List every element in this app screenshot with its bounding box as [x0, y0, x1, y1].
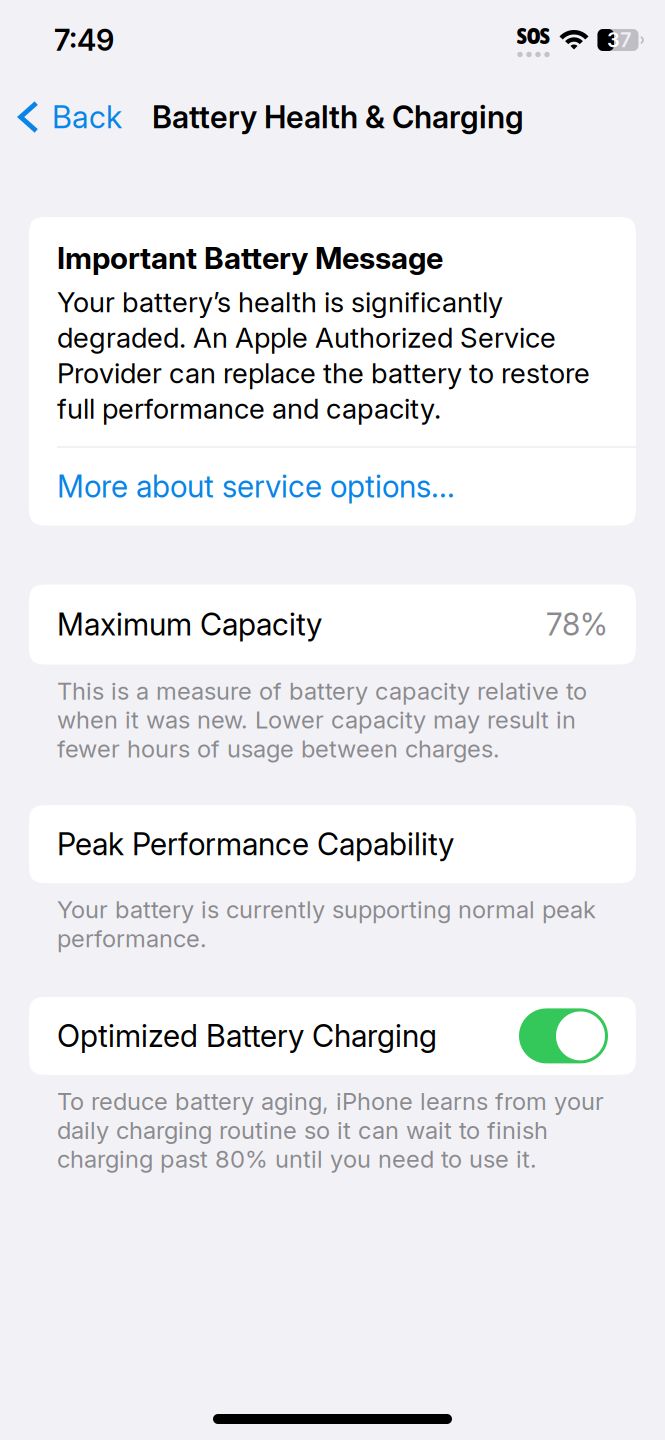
staticText: More about service options... [57, 468, 455, 505]
staticText: Maximum Capacity [57, 606, 322, 643]
staticText: This is a measure of battery capacity re… [57, 676, 587, 763]
button[interactable]: Back [12, 89, 132, 145]
staticText: 3 [607, 28, 620, 52]
staticText: Optimized Battery Charging [57, 1017, 437, 1054]
staticText: To reduce battery aging, iPhone learns f… [57, 1087, 604, 1173]
staticText: Your battery’s health is significantly d… [57, 285, 590, 425]
button[interactable]: More about service options... [29, 447, 636, 525]
staticText: Important Battery Message [57, 240, 443, 276]
staticText: 7:49 [54, 22, 114, 58]
staticText: SOS [517, 23, 550, 49]
staticText: 78% [546, 606, 608, 643]
staticText: Your battery is currently supporting nor… [57, 895, 596, 953]
button[interactable]: Peak Performance Capability [29, 805, 636, 883]
staticText: Peak Performance Capability [57, 826, 454, 863]
button[interactable]: Optimized Battery Charging [519, 1008, 608, 1063]
staticText: Back [52, 98, 122, 135]
staticText: 7 [620, 28, 631, 52]
staticText: Battery Health & Charging [152, 98, 524, 135]
